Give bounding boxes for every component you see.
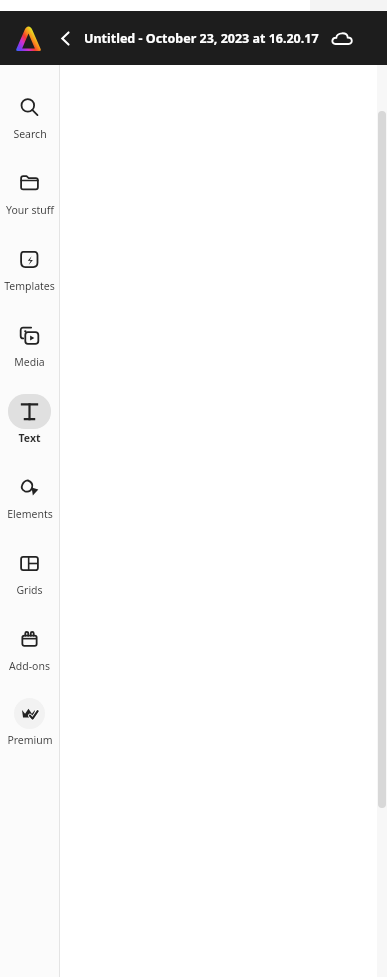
staticText: Media — [14, 355, 45, 369]
staticText: Add-ons — [9, 659, 50, 673]
staticText: Your stuff — [6, 203, 54, 217]
button[interactable]: Cloud sync status — [328, 24, 356, 52]
staticText: Templates — [4, 279, 55, 293]
staticText: Grids — [16, 583, 43, 597]
staticText: Search — [13, 127, 47, 141]
staticText: Premium — [7, 733, 53, 747]
button[interactable]: Elements — [0, 464, 59, 525]
staticText: Untitled - October 23, 2023 at 16.20.17 — [84, 30, 319, 47]
button[interactable]: Your stuff — [0, 160, 59, 221]
button[interactable]: Search — [0, 84, 59, 145]
staticText: Elements — [7, 507, 53, 521]
button[interactable]: Text — [0, 388, 59, 449]
button[interactable]: Premium — [0, 690, 59, 751]
button[interactable]: Adobe Express home — [9, 19, 47, 57]
staticText: Text — [18, 431, 41, 445]
button[interactable]: Templates — [0, 236, 59, 297]
button[interactable]: Grids — [0, 540, 59, 601]
button[interactable]: Media — [0, 312, 59, 373]
button[interactable]: Add-ons — [0, 616, 59, 677]
button[interactable]: Back — [52, 25, 79, 52]
